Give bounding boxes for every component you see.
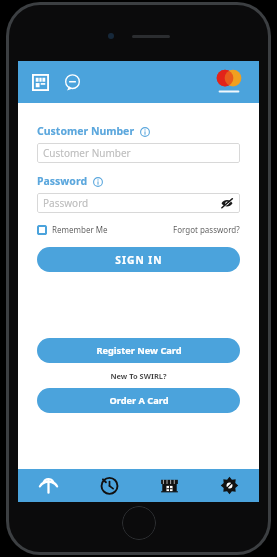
button[interactable]: History	[79, 469, 139, 502]
button[interactable]: Register New Card	[37, 338, 240, 363]
staticText: Order A Card	[109, 394, 169, 407]
button[interactable]: SWIRL menu	[30, 72, 50, 92]
button[interactable]: SIGN IN	[37, 247, 240, 272]
staticText: Remember Me	[52, 224, 108, 235]
button[interactable]: Chat	[62, 72, 82, 92]
staticText: New To SWIRL?	[37, 371, 240, 381]
button[interactable]: Mastercard	[209, 68, 249, 96]
staticText: Password	[37, 174, 88, 188]
staticText: Register New Card	[96, 344, 182, 357]
button[interactable]: Settings	[199, 469, 259, 502]
button[interactable]: Forgot password?	[173, 224, 240, 235]
button[interactable]: Show password	[220, 196, 234, 210]
button[interactable]: Info about Customer Number	[139, 126, 150, 137]
button[interactable]: Stores	[139, 469, 199, 502]
button[interactable]: Customer Number	[37, 143, 240, 163]
staticText: Customer Number	[43, 146, 131, 160]
staticText: Forgot password?	[173, 224, 240, 235]
button[interactable]: Home	[18, 469, 79, 502]
button[interactable]: Remember Me	[37, 224, 108, 235]
button[interactable]: Info about Password	[92, 176, 103, 187]
staticText: Password	[43, 196, 89, 210]
button[interactable]: Password	[37, 193, 240, 213]
button[interactable]: Order A Card	[37, 388, 240, 413]
staticText: SIGN IN	[115, 253, 163, 267]
staticText: Customer Number	[37, 124, 135, 138]
